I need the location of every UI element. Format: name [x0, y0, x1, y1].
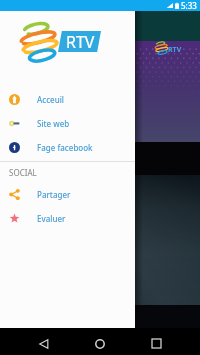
staticText: RTV [66, 31, 95, 53]
staticText: Evaluer [37, 213, 66, 224]
button[interactable]: Site web [0, 111, 135, 135]
staticText: SOCIAL [9, 167, 37, 178]
staticText: RTV [168, 45, 182, 55]
button[interactable]: Acceuil [0, 87, 135, 111]
staticText: Site web [37, 118, 70, 129]
button[interactable]: Back [16, 332, 72, 355]
staticText: Partager [37, 189, 71, 200]
button[interactable]: Home [72, 332, 128, 355]
button[interactable]: Partager [0, 182, 135, 206]
staticText: 5:33 [181, 0, 197, 11]
button[interactable]: Fage facebook [0, 135, 135, 159]
staticText: Fage facebook [37, 142, 93, 153]
staticText: Acceuil [37, 94, 65, 105]
button[interactable]: Evaluer [0, 206, 135, 230]
button[interactable]: Recent apps [128, 332, 184, 355]
